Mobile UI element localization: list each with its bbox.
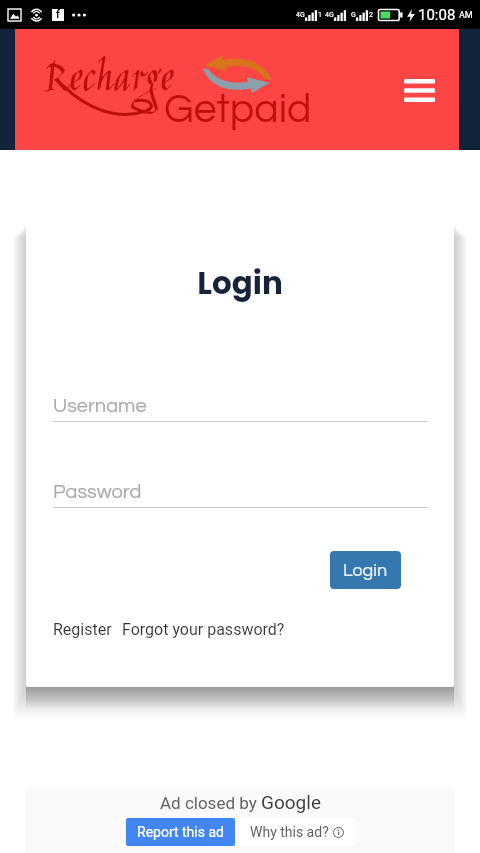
staticText: Ad closed by xyxy=(160,793,261,813)
staticText: Login xyxy=(26,261,454,304)
staticText: 4G xyxy=(325,11,334,19)
button[interactable]: Register xyxy=(53,620,112,639)
staticText: 1 xyxy=(318,11,322,19)
button[interactable]: Password xyxy=(53,482,428,508)
button[interactable]: Report this ad xyxy=(126,818,235,846)
button[interactable]: Why this ad? xyxy=(239,818,355,846)
button[interactable]: Username xyxy=(53,396,428,422)
staticText: Register xyxy=(53,620,112,639)
staticText: Getpaid xyxy=(164,88,312,130)
staticText: Forgot your password? xyxy=(122,620,285,639)
staticText: AM xyxy=(459,10,473,21)
staticText: 10:08 xyxy=(418,6,456,24)
staticText: G xyxy=(351,11,356,19)
staticText: Password xyxy=(53,482,142,503)
staticText: Google xyxy=(261,791,321,813)
staticText: 4G xyxy=(296,11,305,19)
button[interactable]: Menu xyxy=(396,67,442,113)
staticText: Why this ad? xyxy=(250,824,329,840)
staticText: Login xyxy=(343,561,388,580)
staticText: Report this ad xyxy=(137,824,224,840)
staticText: f xyxy=(56,8,60,20)
staticText: 2 xyxy=(369,11,373,19)
button[interactable]: Login xyxy=(330,551,401,589)
button[interactable]: Forgot your password? xyxy=(122,620,285,639)
staticText: Username xyxy=(53,396,147,417)
staticText: Recharge xyxy=(43,47,173,114)
